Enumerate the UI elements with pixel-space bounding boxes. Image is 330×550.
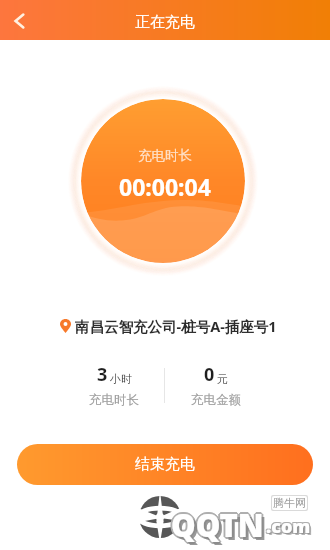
staticText: 正在充电 bbox=[135, 13, 195, 32]
button[interactable]: Back bbox=[0, 0, 40, 40]
staticText: .com bbox=[267, 513, 312, 538]
staticText: QQTN bbox=[173, 504, 266, 546]
staticText: 0 bbox=[204, 362, 215, 387]
staticText: 元 bbox=[217, 372, 228, 386]
staticText: 充电金额 bbox=[191, 392, 241, 408]
staticText: QQTN bbox=[169, 504, 262, 546]
staticText: .com bbox=[266, 514, 311, 539]
staticText: 南昌云智充公司-桩号A-插座号1 bbox=[75, 316, 277, 336]
staticText: .com bbox=[267, 515, 312, 540]
staticText: QQTN bbox=[171, 502, 264, 544]
staticText: 结束充电 bbox=[135, 455, 195, 474]
staticText: .com bbox=[265, 513, 310, 538]
staticText: QQTN bbox=[171, 506, 264, 548]
staticText: QQTN bbox=[174, 507, 267, 549]
staticText: 小时 bbox=[110, 372, 132, 386]
staticText: 充电时长 bbox=[89, 392, 139, 408]
button[interactable]: 结束充电 bbox=[17, 444, 313, 485]
staticText: QQTN bbox=[171, 504, 264, 546]
staticText: 充电时长 bbox=[138, 147, 192, 164]
staticText: 腾牛网 bbox=[273, 496, 306, 510]
staticText: QQTN bbox=[172, 505, 265, 547]
staticText: QQTN bbox=[170, 505, 263, 547]
staticText: QQTN bbox=[172, 503, 265, 545]
staticText: .com bbox=[265, 515, 310, 540]
staticText: QQTN bbox=[174, 507, 267, 549]
staticText: 3 bbox=[97, 362, 108, 387]
staticText: QQTN bbox=[170, 503, 263, 545]
staticText: .com bbox=[268, 516, 313, 541]
staticText: 00:00:04 bbox=[119, 171, 211, 202]
